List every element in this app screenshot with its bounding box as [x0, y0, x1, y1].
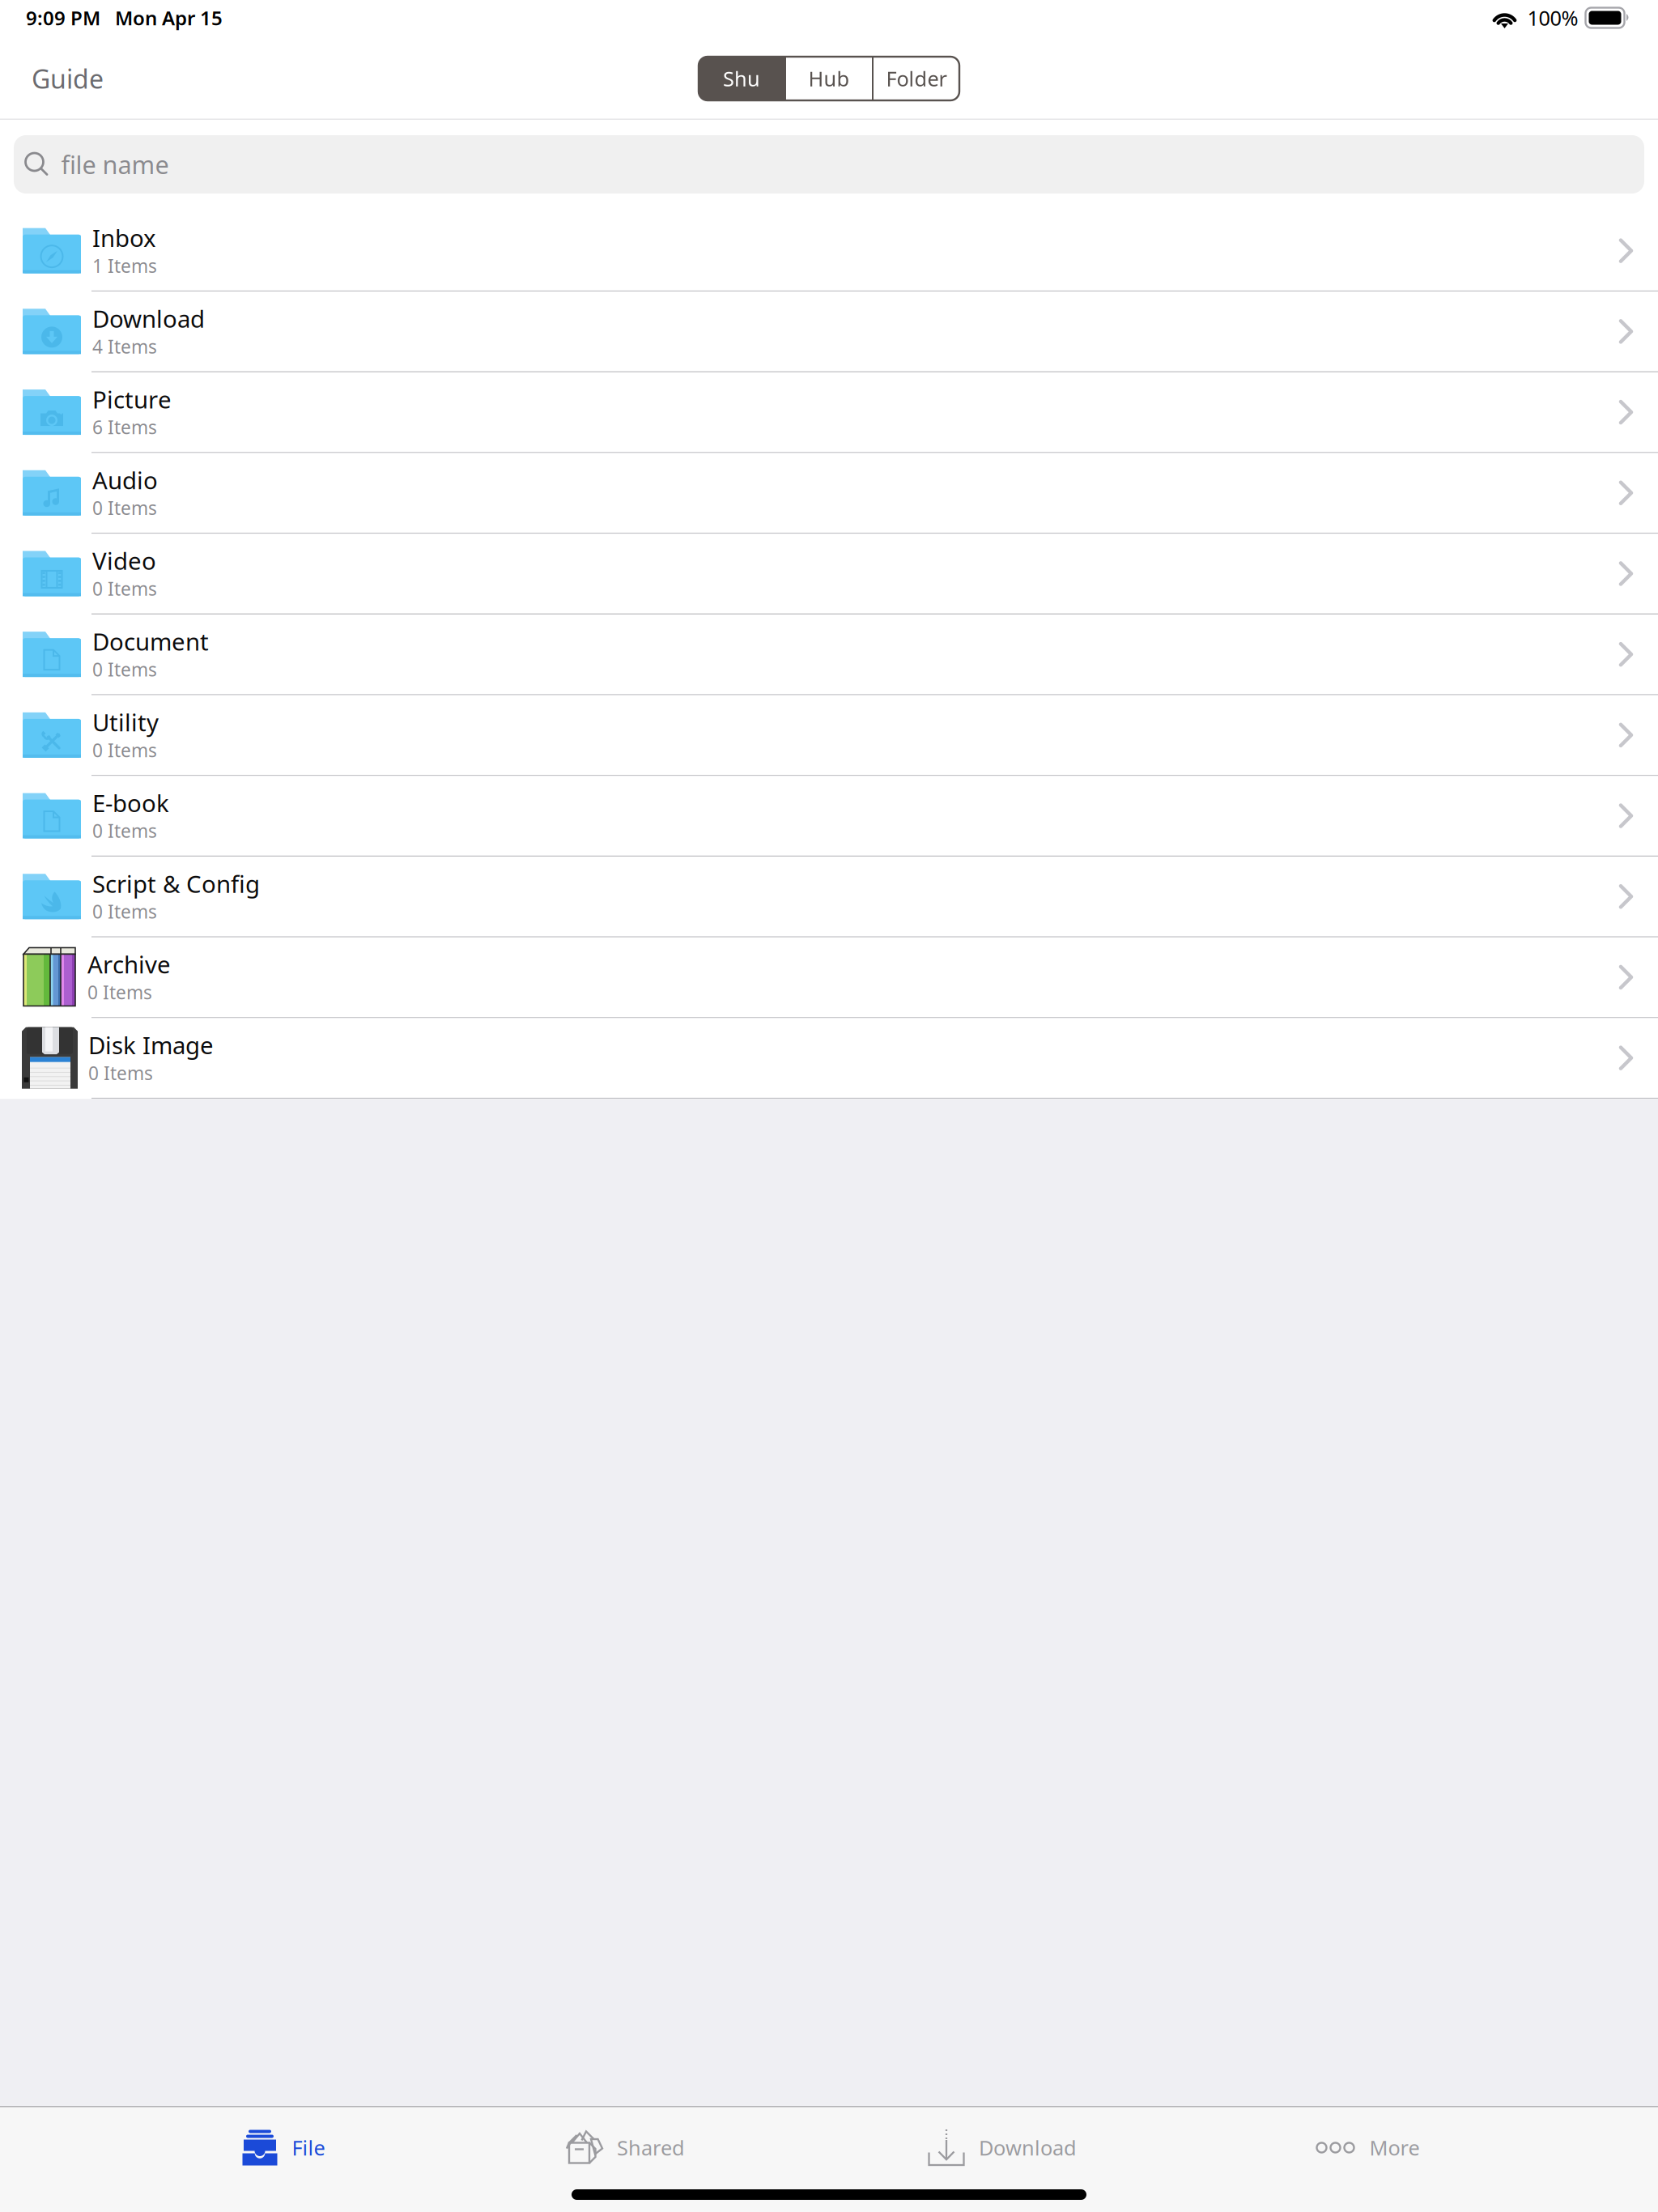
staticText: 0 Items [92, 819, 157, 843]
button[interactable]: Disk Image [0, 1018, 1658, 1099]
button[interactable]: Script & Config [0, 857, 1658, 937]
staticText: 4 Items [92, 334, 157, 359]
staticText: 0 Items [92, 657, 157, 681]
button[interactable]: Hub [786, 57, 872, 100]
staticText: Folder [886, 65, 947, 92]
button[interactable]: Audio [0, 453, 1658, 534]
staticText: Download [92, 303, 205, 334]
staticText: More [1369, 2134, 1420, 2161]
staticText: Download [979, 2134, 1077, 2161]
button[interactable]: Shu [699, 57, 784, 100]
staticText: 100% [1527, 4, 1578, 31]
staticText: 1 Items [92, 254, 157, 278]
staticText: 0 Items [92, 738, 157, 762]
staticText: Video [92, 545, 156, 576]
staticText: 0 Items [92, 576, 157, 601]
staticText: file name [61, 148, 169, 181]
staticText: Archive [87, 949, 171, 980]
staticText: 0 Items [92, 496, 157, 520]
staticText: Shared [617, 2134, 685, 2161]
button[interactable]: E-book [0, 776, 1658, 857]
staticText: Shu [723, 65, 760, 92]
staticText: Script & Config [92, 868, 260, 899]
button[interactable]: Video [0, 534, 1658, 615]
staticText: Document [92, 626, 209, 657]
button[interactable]: More [1315, 2111, 1420, 2184]
staticText: Hub [808, 65, 850, 92]
staticText: 0 Items [92, 899, 157, 924]
staticText: E-book [92, 787, 169, 819]
staticText: Utility [92, 706, 159, 738]
staticText: Disk Image [88, 1029, 214, 1061]
staticText: 6 Items [92, 415, 157, 439]
staticText: Inbox [92, 222, 156, 254]
button[interactable]: Shared [567, 2111, 685, 2184]
staticText: Audio [92, 464, 158, 496]
button[interactable]: Folder [874, 57, 959, 100]
staticText: 0 Items [87, 980, 152, 1004]
button[interactable]: Inbox [0, 211, 1658, 292]
button[interactable]: Download [928, 2111, 1077, 2184]
button[interactable]: Archive [0, 937, 1658, 1018]
button[interactable]: Document [0, 615, 1658, 695]
staticText: Picture [92, 383, 172, 415]
button[interactable]: File [242, 2111, 325, 2184]
button[interactable]: Utility [0, 695, 1658, 776]
staticText: File [292, 2134, 325, 2161]
button[interactable]: Picture [0, 372, 1658, 453]
staticText: 0 Items [88, 1061, 153, 1085]
staticText: Guide [32, 61, 104, 96]
staticText: 9:09 PM [26, 5, 100, 31]
staticText: Mon Apr 15 [115, 5, 223, 31]
button[interactable]: Download [0, 292, 1658, 372]
